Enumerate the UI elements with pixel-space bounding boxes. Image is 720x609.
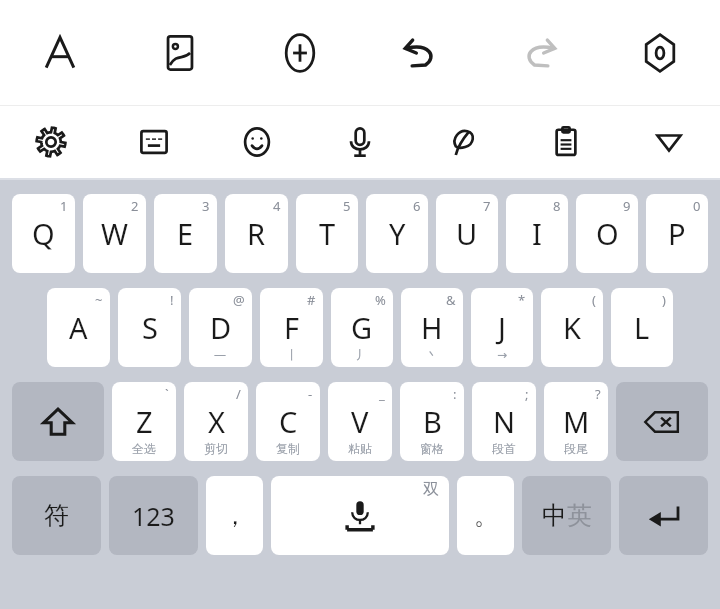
button[interactable]: 9 (576, 194, 638, 273)
button[interactable]: Text style (0, 0, 120, 105)
button[interactable]: / (184, 382, 248, 461)
button[interactable]: * (471, 288, 533, 367)
staticText: V (351, 402, 369, 441)
staticText: 4 (273, 197, 281, 215)
staticText: 段首 (492, 441, 516, 456)
staticText: 8 (553, 197, 561, 215)
button[interactable]: Undo (360, 0, 480, 105)
staticText: _ (379, 385, 385, 403)
button[interactable]: - (256, 382, 320, 461)
staticText: B (423, 402, 442, 441)
staticText: ， (223, 501, 247, 531)
staticText: 0 (693, 197, 701, 215)
staticText: 中 (542, 500, 567, 531)
staticText: ? (595, 385, 601, 403)
button[interactable]: 4 (225, 194, 288, 273)
staticText: % (375, 291, 386, 309)
button[interactable]: Add (240, 0, 360, 105)
button[interactable]: Kaomoji (102, 106, 205, 178)
button[interactable]: # (260, 288, 323, 367)
button[interactable]: ? (544, 382, 608, 461)
staticText: X (208, 402, 225, 441)
button[interactable]: Emoji (205, 106, 308, 178)
button[interactable]: 123 (109, 476, 198, 555)
button[interactable]: ; (472, 382, 536, 461)
staticText: ` (165, 385, 169, 403)
button[interactable]: Hide keyboard (617, 106, 720, 178)
staticText: 全选 (132, 441, 156, 456)
staticText: 。 (474, 501, 498, 531)
button[interactable]: Settings (0, 106, 102, 178)
staticText: ; (525, 385, 529, 403)
staticText: K (563, 308, 581, 347)
button[interactable]: Clipboard (514, 106, 617, 178)
button[interactable]: 符 (12, 476, 101, 555)
button[interactable]: 3 (154, 194, 217, 273)
staticText: O (596, 214, 619, 253)
staticText: : (453, 385, 457, 403)
button[interactable]: ( (541, 288, 603, 367)
staticText: ~ (95, 291, 103, 309)
staticText: G (351, 308, 373, 347)
staticText: 丨 (286, 347, 298, 362)
staticText: → (497, 348, 508, 362)
staticText: S (142, 308, 158, 347)
button[interactable]: @ (189, 288, 252, 367)
button[interactable]: Handwriting (411, 106, 514, 178)
staticText: 123 (132, 499, 175, 533)
staticText: U (456, 214, 478, 253)
button[interactable]: Backspace (616, 382, 708, 461)
staticText: 丿 (356, 347, 368, 362)
staticText: * (518, 291, 526, 309)
button[interactable]: 中 (522, 476, 611, 555)
staticText: 双 (423, 480, 439, 500)
button[interactable]: 0 (646, 194, 708, 273)
staticText: F (284, 308, 300, 347)
button[interactable]: 。 (457, 476, 514, 555)
staticText: C (279, 402, 298, 441)
button[interactable]: 6 (366, 194, 428, 273)
staticText: 1 (60, 197, 68, 215)
button[interactable]: ~ (47, 288, 110, 367)
staticText: 2 (131, 197, 139, 215)
button[interactable]: ! (118, 288, 181, 367)
staticText: P (668, 214, 686, 253)
staticText: T (319, 214, 336, 253)
button[interactable]: _ (328, 382, 392, 461)
button[interactable]: Space, voice input (271, 476, 449, 555)
staticText: 粘贴 (348, 441, 372, 456)
staticText: ) (662, 291, 666, 309)
staticText: H (421, 308, 443, 347)
staticText: 符 (44, 500, 69, 531)
button[interactable]: % (331, 288, 393, 367)
staticText: / (236, 385, 241, 403)
staticText: 英 (567, 500, 592, 531)
button[interactable]: 2 (83, 194, 146, 273)
button[interactable]: : (400, 382, 464, 461)
staticText: ! (170, 291, 174, 309)
button[interactable]: ` (112, 382, 176, 461)
staticText: 7 (483, 197, 491, 215)
staticText: Y (389, 214, 406, 253)
button[interactable]: Enter (619, 476, 708, 555)
staticText: 6 (413, 197, 421, 215)
staticText: & (446, 291, 456, 309)
staticText: 复制 (276, 441, 300, 456)
button[interactable]: & (401, 288, 463, 367)
button[interactable]: ) (611, 288, 673, 367)
button[interactable]: Insert image (120, 0, 240, 105)
button[interactable]: 8 (506, 194, 568, 273)
button[interactable]: Voice input (308, 106, 411, 178)
button[interactable]: Shift (12, 382, 104, 461)
button[interactable]: Settings (600, 0, 720, 105)
button[interactable]: Redo (480, 0, 600, 105)
button[interactable]: 7 (436, 194, 498, 273)
staticText: # (307, 291, 316, 309)
button[interactable]: ， (206, 476, 263, 555)
staticText: Z (136, 402, 153, 441)
staticText: ( (592, 291, 596, 309)
staticText: I (532, 214, 542, 253)
button[interactable]: 1 (12, 194, 75, 273)
button[interactable]: 5 (296, 194, 358, 273)
staticText: 3 (202, 197, 210, 215)
